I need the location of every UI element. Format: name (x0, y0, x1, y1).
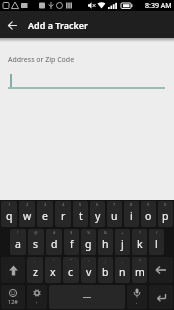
button[interactable]: : (81, 257, 96, 283)
button[interactable] (149, 285, 173, 309)
staticText: # (53, 230, 56, 235)
staticText: " (70, 258, 72, 263)
button[interactable]: 6 (90, 201, 105, 227)
staticText: z (33, 265, 38, 279)
staticText: 4 (62, 202, 65, 207)
button[interactable] (0, 13, 24, 37)
button[interactable]: + (115, 229, 130, 255)
staticText: i (130, 209, 133, 223)
staticText: Add a Tracker (28, 19, 88, 31)
staticText: % (87, 230, 91, 235)
staticText: ' (53, 258, 54, 263)
button[interactable] (49, 285, 125, 309)
staticText: o (145, 209, 152, 223)
button[interactable]: @ (28, 229, 44, 255)
button[interactable]: & (98, 229, 113, 255)
button[interactable]: / (149, 229, 164, 255)
staticText: , (122, 258, 124, 263)
button[interactable] (1, 257, 25, 283)
staticText: $ (70, 230, 73, 235)
staticText: g (85, 237, 92, 251)
staticText: m (135, 265, 145, 279)
button[interactable]: 3 (37, 201, 53, 227)
staticText: 1 (8, 202, 11, 207)
staticText: j (121, 237, 124, 251)
button[interactable]: ? (132, 229, 147, 255)
staticText: ! (17, 230, 19, 235)
button[interactable]: ? (132, 257, 147, 283)
staticText: ? (139, 258, 141, 263)
staticText: h (102, 237, 109, 251)
button[interactable]: ' (45, 257, 61, 283)
staticText: c (68, 265, 74, 279)
button[interactable]: 2 (19, 201, 35, 227)
staticText: / (156, 230, 158, 235)
staticText: 6 (96, 202, 99, 207)
button[interactable]: Address or Zip Code (8, 55, 174, 89)
staticText: f (70, 237, 74, 251)
staticText: & (104, 230, 107, 235)
staticText: n (119, 265, 126, 279)
staticText: 9 (147, 202, 150, 207)
button[interactable]: - (27, 257, 43, 283)
button[interactable]: ! (10, 229, 26, 255)
staticText: d (51, 237, 58, 251)
staticText: @ (34, 230, 38, 235)
staticText: . (136, 299, 138, 306)
staticText: 12# (8, 298, 18, 305)
staticText: ? (139, 230, 141, 235)
button[interactable]: 4 (55, 201, 71, 227)
staticText: , (36, 298, 38, 305)
staticText: 0 (164, 202, 167, 207)
button[interactable]: , (27, 285, 47, 309)
staticText: - (34, 258, 36, 263)
staticText: y (95, 209, 101, 223)
button[interactable]: " (63, 257, 79, 283)
staticText: 7 (113, 202, 116, 207)
staticText: 2 (26, 202, 29, 207)
staticText: u (111, 209, 118, 223)
button[interactable]: 8 (124, 201, 139, 227)
staticText: 3 (44, 202, 47, 207)
staticText: l (155, 237, 158, 251)
staticText: 5 (79, 202, 82, 207)
button[interactable]: , (115, 257, 130, 283)
button[interactable]: ; (98, 257, 113, 283)
staticText: t (79, 209, 83, 223)
staticText: ; (105, 258, 107, 263)
button[interactable]: 0 (158, 201, 173, 227)
staticText: s (33, 237, 39, 251)
staticText: x (50, 265, 56, 279)
button[interactable]: 5 (73, 201, 88, 227)
staticText: r (61, 209, 66, 223)
button[interactable] (149, 257, 173, 283)
staticText: w (23, 209, 32, 223)
staticText: p (162, 209, 169, 223)
button[interactable]: % (81, 229, 96, 255)
staticText: 8 (130, 202, 133, 207)
button[interactable]: 1 (1, 201, 17, 227)
button[interactable]: 7 (107, 201, 122, 227)
button[interactable]: $ (64, 229, 79, 255)
staticText: q (6, 209, 13, 223)
button[interactable]: 9 (141, 201, 156, 227)
button[interactable]: 12# (1, 285, 25, 309)
staticText: k (137, 237, 143, 251)
staticText: v (86, 265, 92, 279)
staticText: a (15, 237, 21, 251)
button[interactable]: # (46, 229, 62, 255)
button[interactable]: . (127, 285, 147, 309)
staticText: b (102, 265, 109, 279)
staticText: + (121, 230, 124, 235)
staticText: Address or Zip Code (8, 55, 75, 65)
staticText: : (88, 258, 90, 263)
staticText: 8:39 AM (145, 1, 172, 11)
staticText: e (42, 209, 48, 223)
